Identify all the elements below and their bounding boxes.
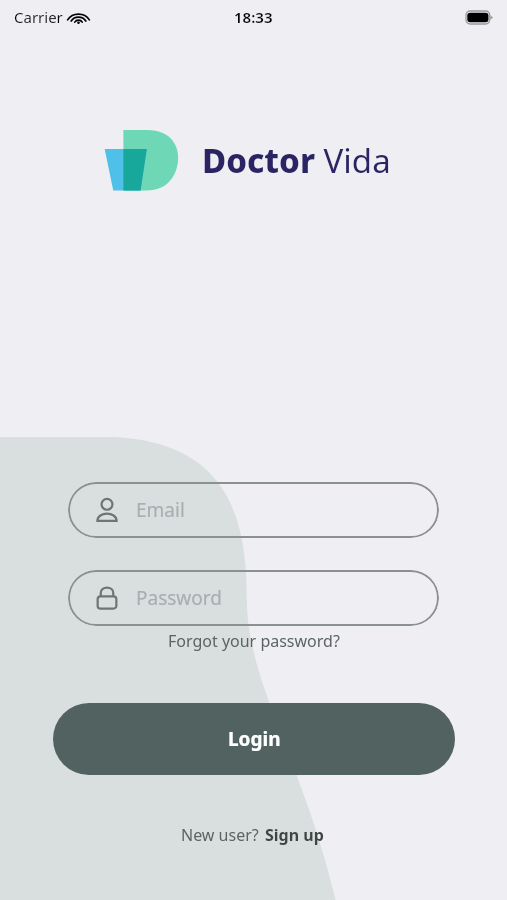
staticText: Carrier: [14, 7, 63, 27]
button[interactable]: Forgot your password?: [162, 628, 346, 654]
staticText: Email: [136, 497, 185, 523]
staticText: New user?: [181, 824, 263, 846]
staticText: Password: [136, 585, 222, 611]
button[interactable]: Password: [68, 570, 439, 626]
button[interactable]: Sign up: [263, 822, 326, 848]
button[interactable]: Login: [53, 703, 455, 775]
staticText: Forgot your password?: [168, 630, 340, 652]
staticText: 18:33: [234, 7, 273, 27]
staticText: Doctor Vida: [202, 138, 391, 183]
staticText: Login: [228, 726, 281, 752]
button[interactable]: Email: [68, 482, 439, 538]
staticText: Sign up: [265, 824, 324, 846]
